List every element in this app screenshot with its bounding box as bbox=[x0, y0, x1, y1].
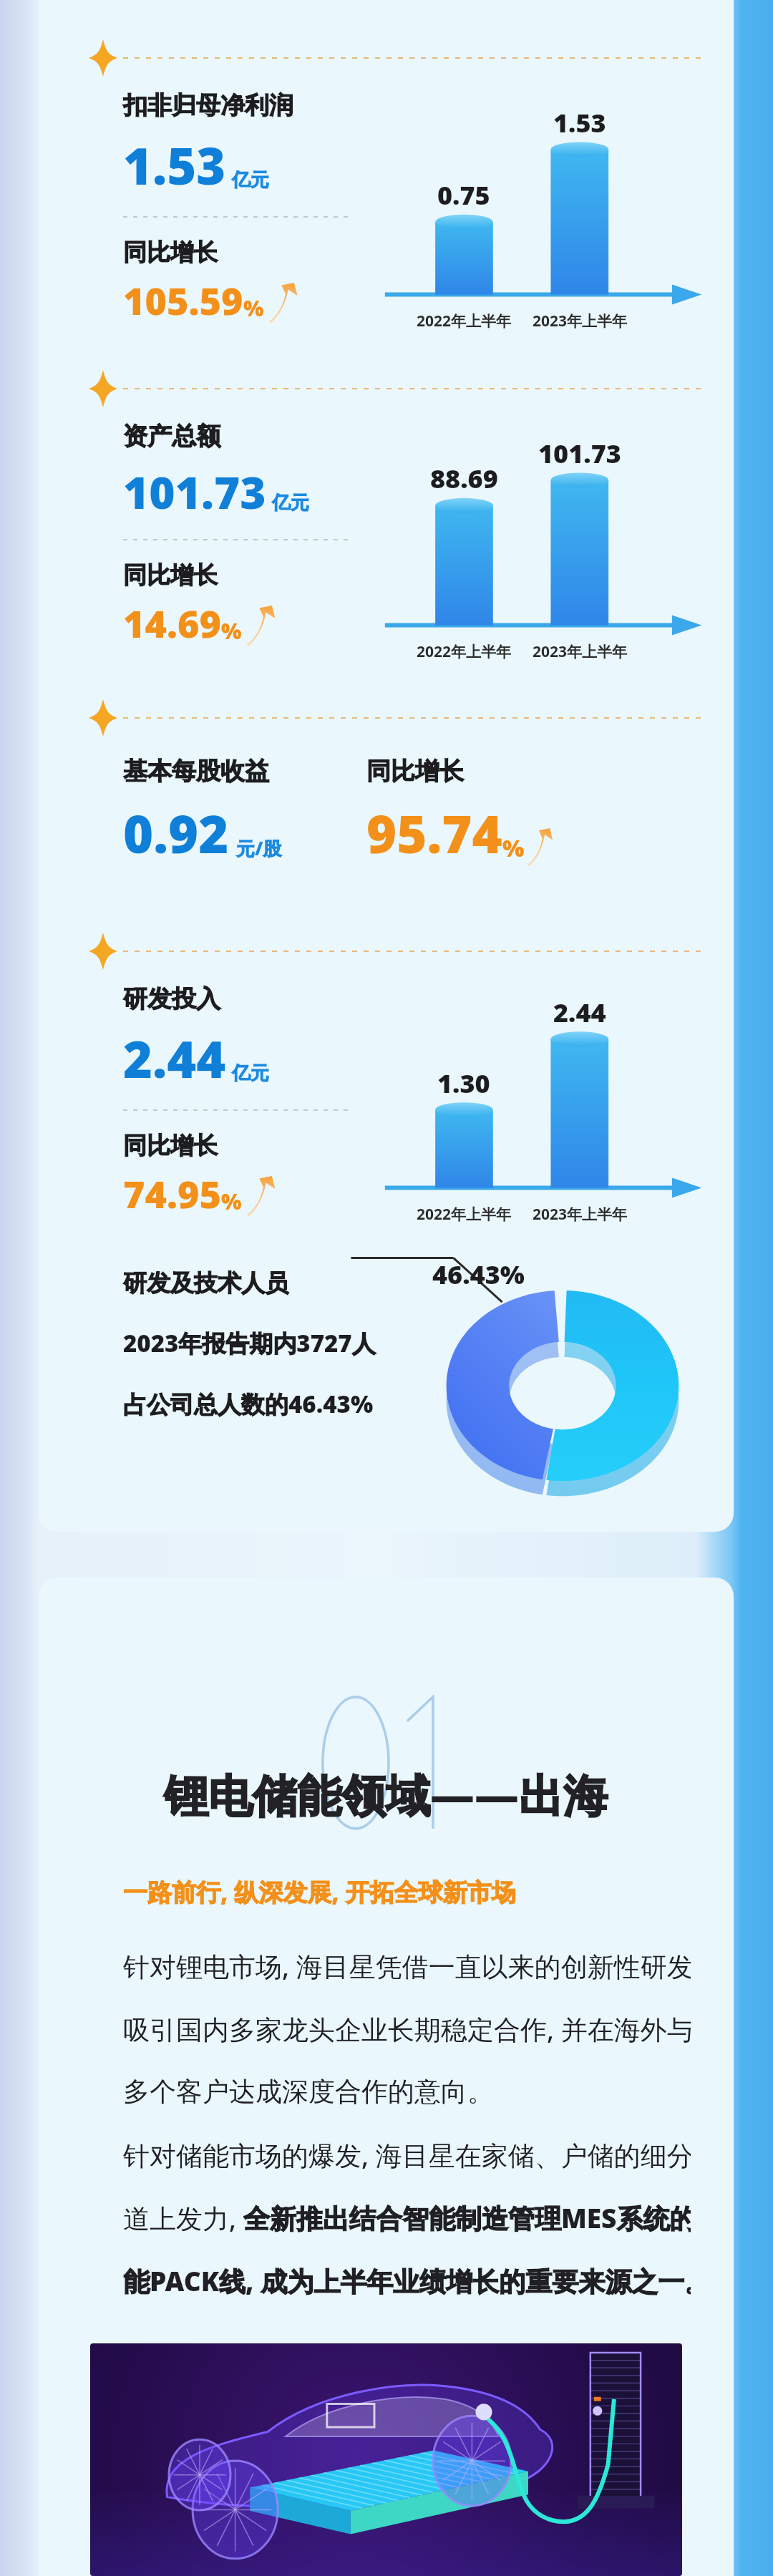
staticText: 0.92 bbox=[123, 798, 229, 868]
staticText: 同比增长 bbox=[123, 560, 218, 590]
staticText: 101.73 bbox=[123, 462, 266, 522]
staticText: 74.95 bbox=[123, 1168, 221, 1219]
staticText: 2022年上半年 bbox=[417, 641, 512, 662]
staticText: 针对储能市场的爆发, 海目星在家储、户储的细分赛 bbox=[123, 2137, 691, 2173]
staticText: 2023年上半年 bbox=[533, 311, 628, 331]
staticText: 针对锂电市场, 海目星凭借一直以来的创新性研发, bbox=[123, 1948, 691, 1984]
staticText: 2.44 bbox=[123, 1024, 226, 1092]
staticText: 亿元 bbox=[232, 1061, 269, 1085]
staticText: 锂电储能领域——出海 bbox=[164, 1764, 608, 1825]
staticText: 扣非归母净利润 bbox=[123, 90, 293, 121]
staticText: 同比增长 bbox=[123, 1131, 218, 1161]
staticText: 能PACK线, 成为上半年业绩增长的重要来源之一。 bbox=[123, 2262, 691, 2299]
staticText: 资产总额 bbox=[123, 421, 220, 452]
staticText: 同比增长 bbox=[123, 238, 218, 268]
staticText: 研发及技术人员 bbox=[123, 1268, 288, 1298]
staticText: 全新推出结合智能制造管理MES系统的储 bbox=[243, 2200, 691, 2236]
staticText: 研发投入 bbox=[123, 983, 220, 1014]
staticText: % bbox=[221, 616, 242, 646]
staticText: 基本每股收益 bbox=[123, 756, 269, 787]
staticText: 吸引国内多家龙头企业长期稳定合作, 并在海外与 bbox=[123, 2011, 691, 2047]
staticText: 2.44 bbox=[553, 995, 606, 1030]
staticText: 道上发力, bbox=[123, 2200, 243, 2236]
staticText: 105.59 bbox=[123, 275, 243, 326]
staticText: % bbox=[221, 1187, 242, 1216]
staticText: 101.73 bbox=[538, 436, 621, 471]
staticText: 88.69 bbox=[430, 461, 498, 496]
staticText: 14.69 bbox=[123, 598, 221, 648]
staticText: 2023年上半年 bbox=[533, 1204, 628, 1225]
staticText: % bbox=[243, 293, 264, 323]
staticText: 一路前行, 纵深发展, 开拓全球新市场 bbox=[123, 1875, 516, 1908]
staticText: 1.53 bbox=[553, 105, 606, 140]
staticText: 95.74 bbox=[366, 798, 502, 868]
staticText: 占公司总人数的46.43% bbox=[123, 1388, 374, 1420]
staticText: 2023年上半年 bbox=[533, 641, 628, 662]
staticText: 亿元 bbox=[272, 491, 309, 515]
staticText: 0.75 bbox=[437, 178, 490, 213]
staticText: 同比增长 bbox=[366, 756, 464, 787]
staticText: % bbox=[502, 832, 525, 864]
staticText: 亿元 bbox=[232, 168, 269, 192]
staticText: 多个客户达成深度合作的意向。 bbox=[123, 2075, 494, 2109]
staticText: 2022年上半年 bbox=[417, 1204, 512, 1225]
staticText: 1.53 bbox=[123, 131, 226, 199]
staticText: 2022年上半年 bbox=[417, 311, 512, 331]
staticText: 元/股 bbox=[236, 835, 282, 861]
staticText: 46.43% bbox=[432, 1257, 525, 1292]
staticText: 1.30 bbox=[437, 1066, 490, 1101]
staticText: 2023年报告期内3727人 bbox=[123, 1327, 376, 1359]
